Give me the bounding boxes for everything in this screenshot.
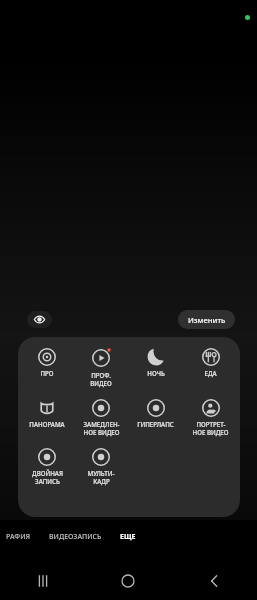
staticText: ПАНОРАМА bbox=[29, 420, 65, 428]
staticText: ПРО bbox=[40, 369, 54, 377]
staticText: РАФИЯ bbox=[6, 532, 31, 542]
staticText: ЗАПИСЬ bbox=[35, 477, 60, 485]
button[interactable]: ГИПЕРЛАПС bbox=[128, 397, 183, 430]
staticText: МУЛЬТИ- bbox=[87, 469, 115, 477]
staticText: ПОРТРЕТ- bbox=[196, 420, 226, 428]
button[interactable]: ПОРТРЕТ- bbox=[183, 397, 238, 438]
button[interactable]: ЕЩЕ bbox=[116, 529, 140, 545]
button[interactable]: Recent apps bbox=[0, 562, 85, 600]
staticText: Изменить bbox=[188, 315, 226, 325]
button[interactable]: ПРОФ. bbox=[74, 346, 128, 389]
staticText: НОЕ ВИДЕО bbox=[192, 428, 229, 436]
button[interactable]: ПАНОРАМА bbox=[20, 397, 74, 430]
button[interactable]: ВИДЕОЗАПИСЬ bbox=[45, 529, 106, 545]
staticText: ДВОЙНАЯ bbox=[32, 469, 63, 477]
button[interactable]: Back bbox=[171, 562, 257, 600]
staticText: ГИПЕРЛАПС bbox=[137, 420, 174, 428]
button[interactable]: РАФИЯ bbox=[2, 529, 35, 545]
staticText: КАДР bbox=[93, 477, 110, 485]
staticText: ЕДА bbox=[204, 369, 217, 377]
button[interactable]: ПРО bbox=[20, 346, 74, 379]
button[interactable]: Preview modes bbox=[27, 311, 52, 328]
staticText: ЕЩЕ bbox=[120, 532, 136, 542]
staticText: ЗАМЕДЛЕН- bbox=[83, 420, 120, 428]
button[interactable]: Home bbox=[85, 562, 171, 600]
staticText: ВИДЕОЗАПИСЬ bbox=[49, 532, 102, 542]
staticText: ВИДЕО bbox=[90, 379, 112, 387]
staticText: НОЕ ВИДЕО bbox=[83, 428, 120, 436]
button[interactable]: ДВОЙНАЯ bbox=[20, 446, 74, 487]
button[interactable]: ЗАМЕДЛЕН- bbox=[74, 397, 128, 438]
button[interactable]: ЕДА bbox=[183, 346, 238, 379]
button[interactable]: НОЧЬ bbox=[128, 346, 183, 379]
staticText: ПРОФ. bbox=[91, 371, 111, 379]
button[interactable]: Изменить bbox=[178, 310, 235, 329]
button[interactable]: МУЛЬТИ- bbox=[74, 446, 128, 487]
staticText: НОЧЬ bbox=[147, 369, 165, 377]
